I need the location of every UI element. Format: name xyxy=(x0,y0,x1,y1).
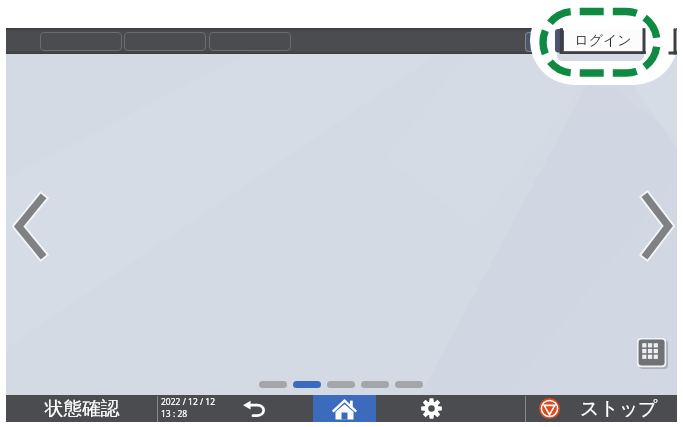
staticText: 状態確認 xyxy=(45,397,119,420)
staticText: 13 : 28 xyxy=(161,408,188,420)
button[interactable]: Next page xyxy=(643,194,672,258)
button[interactable] xyxy=(293,381,321,388)
button[interactable] xyxy=(327,381,355,388)
button[interactable]: Login xyxy=(563,29,643,52)
staticText: ログイン xyxy=(574,32,632,50)
button[interactable]: All applications xyxy=(637,338,668,369)
button[interactable]: Shortcut xyxy=(209,32,291,51)
button[interactable]: Shortcut xyxy=(40,32,122,51)
button[interactable]: Settings xyxy=(376,395,486,422)
button[interactable]: Account xyxy=(526,33,561,51)
button[interactable] xyxy=(395,381,423,388)
button[interactable]: ストップ xyxy=(526,395,677,422)
button[interactable]: Home xyxy=(313,395,376,422)
button[interactable] xyxy=(361,381,389,388)
staticText: 2022 / 12 / 12 xyxy=(161,396,216,408)
button[interactable] xyxy=(259,381,287,388)
button[interactable]: Previous page xyxy=(15,195,45,258)
staticText: ストップ xyxy=(580,397,658,421)
button[interactable]: Shortcut xyxy=(124,32,206,51)
button[interactable]: 状態確認 xyxy=(6,395,157,422)
button[interactable]: Back xyxy=(233,395,277,422)
